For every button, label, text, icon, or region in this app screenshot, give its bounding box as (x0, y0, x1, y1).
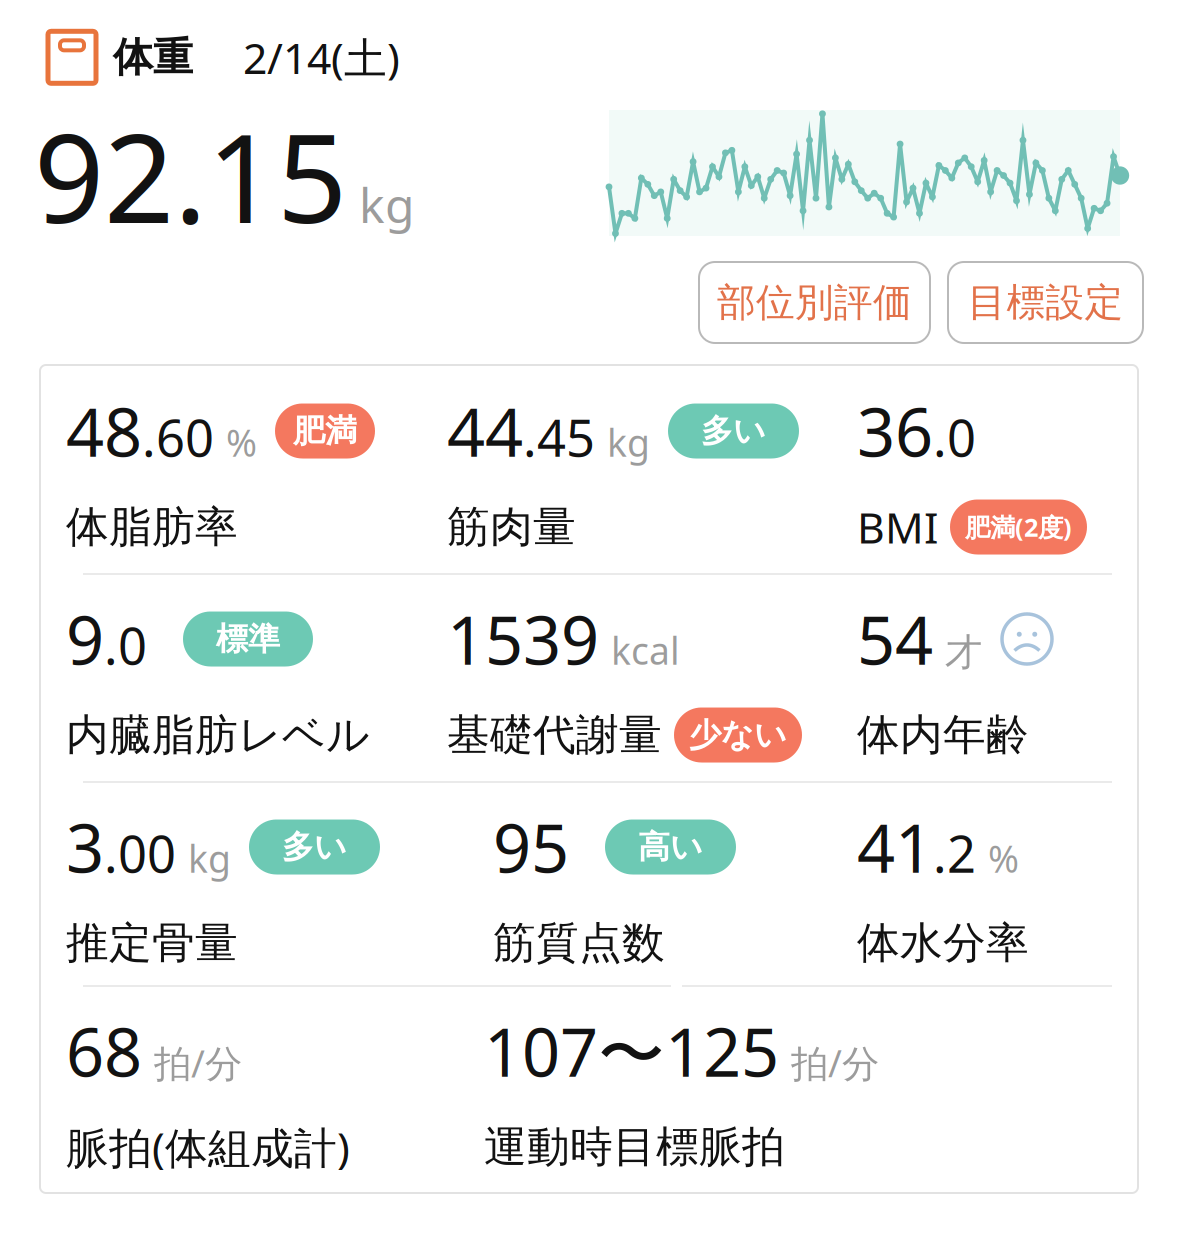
staticText: 体水分率 (857, 917, 1029, 969)
staticText: 才 (945, 629, 982, 675)
staticText: 体脂肪率 (66, 501, 238, 553)
staticText: .60 (142, 404, 214, 471)
staticText: 内臓脂肪レベル (66, 709, 370, 761)
staticText: % (226, 418, 257, 467)
staticText: 多い (701, 411, 766, 451)
button[interactable]: 44 (447, 367, 857, 573)
staticText: 44 (447, 387, 523, 475)
button[interactable]: 目標設定 (948, 262, 1143, 343)
staticText: 少ない (689, 715, 787, 755)
staticText: 107〜125 (484, 1007, 779, 1095)
staticText: 体重 (113, 33, 193, 82)
button[interactable]: 9 (66, 575, 447, 781)
button[interactable]: 95 (447, 783, 857, 985)
staticText: 48 (66, 387, 142, 475)
button[interactable]: 48 (66, 367, 447, 573)
staticText: .00 (104, 820, 176, 887)
button[interactable]: 部位別評価 (699, 262, 930, 343)
button[interactable]: 体重 (48, 29, 400, 86)
button[interactable]: 54 (857, 575, 1112, 781)
staticText: 基礎代謝量 (447, 709, 662, 761)
staticText: .0 (104, 612, 147, 679)
button[interactable]: 68 (66, 987, 447, 1190)
staticText: 41 (857, 803, 933, 891)
button[interactable]: 107〜125 (447, 987, 1112, 1190)
staticText: 36 (857, 387, 933, 475)
staticText: 体内年齢 (857, 709, 1029, 761)
staticText: 54 (857, 595, 933, 683)
button[interactable]: 41 (857, 783, 1112, 985)
staticText: 拍/分 (154, 1038, 242, 1088)
staticText: 標準 (216, 619, 280, 659)
staticText: 9 (66, 595, 104, 683)
staticText: kg (359, 172, 415, 236)
staticText: 推定骨量 (66, 917, 238, 969)
staticText: .0 (933, 404, 976, 471)
staticText: 筋質点数 (493, 917, 665, 969)
staticText: kg (607, 418, 650, 467)
staticText: 肥満 (293, 411, 357, 451)
staticText: 拍/分 (791, 1038, 879, 1087)
staticText: 目標設定 (967, 279, 1123, 326)
staticText: 筋肉量 (447, 501, 576, 553)
staticText: 2/14(土) (243, 29, 400, 86)
staticText: 68 (66, 1007, 142, 1095)
staticText: 高い (638, 827, 703, 867)
staticText: 92.15 (34, 94, 347, 257)
staticText: 肥満(2度) (965, 510, 1072, 544)
staticText: .45 (523, 404, 595, 471)
staticText: % (988, 834, 1019, 883)
staticText: 1539 (447, 595, 599, 683)
staticText: 95 (493, 803, 569, 891)
button[interactable]: 36 (857, 367, 1112, 573)
staticText: 3 (66, 803, 104, 891)
staticText: 部位別評価 (717, 279, 912, 326)
staticText: 脈拍(体組成計) (66, 1119, 350, 1175)
staticText: 運動時目標脈拍 (484, 1121, 785, 1173)
staticText: .2 (933, 820, 976, 887)
staticText: 多い (282, 827, 347, 867)
staticText: kcal (611, 626, 680, 675)
button[interactable]: 1539 (447, 575, 857, 781)
staticText: BMI (857, 499, 938, 555)
button[interactable]: 体重の推移グラフ (609, 110, 1120, 236)
button[interactable]: 3 (66, 783, 447, 985)
staticText: kg (188, 834, 231, 883)
